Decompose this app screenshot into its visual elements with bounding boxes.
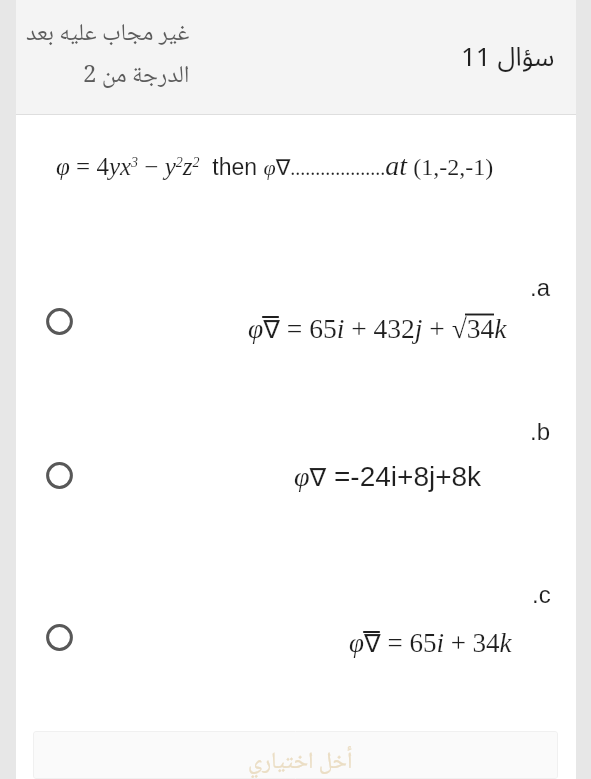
- staticText: φ∇ = 65i + 34k: [349, 628, 512, 658]
- staticText: φ = 4yx3 − y2z2 then φ∇.................…: [56, 150, 494, 181]
- staticText: الدرجة من 2: [83, 56, 190, 97]
- button[interactable]: Select answer: [46, 462, 73, 489]
- button[interactable]: Select answer: [46, 624, 73, 651]
- staticText: .a: [530, 274, 551, 301]
- staticText: أخل اختياري: [248, 743, 353, 779]
- staticText: غير مجاب عليه بعد: [26, 14, 190, 55]
- staticText: .b: [530, 418, 551, 445]
- staticText: .c: [532, 581, 551, 608]
- staticText: سؤال 11: [461, 30, 555, 85]
- button[interactable]: Select answer: [46, 308, 73, 335]
- button[interactable]: أخل اختياري: [33, 731, 558, 779]
- staticText: φ∇ = 65i + 432j + √34k: [248, 313, 507, 343]
- staticText: φ∇ =-24i+8j+8k: [294, 461, 482, 492]
